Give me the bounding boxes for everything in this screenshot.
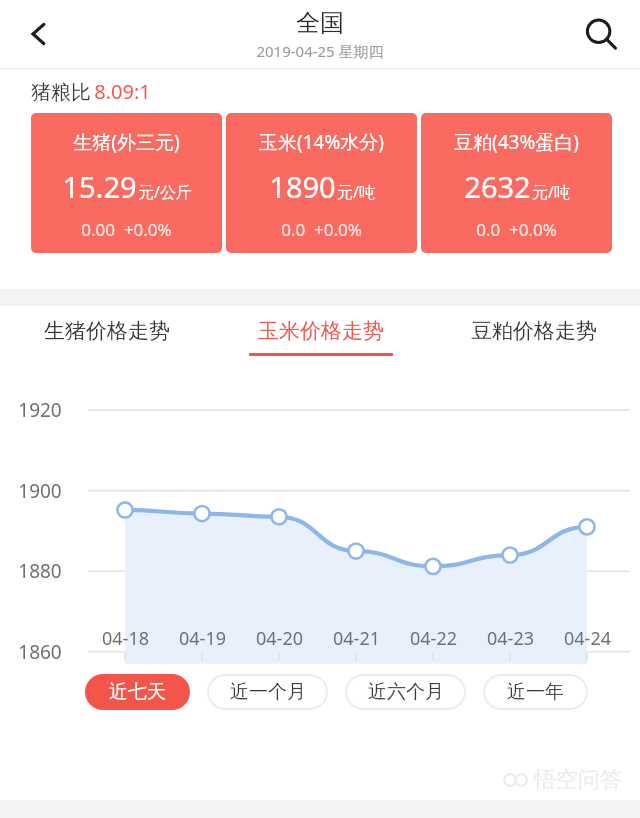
staticText: 近六个月 <box>368 680 444 704</box>
staticText: 1890 <box>269 167 336 206</box>
staticText: 04-21 <box>333 626 380 651</box>
staticText: 04-20 <box>256 626 303 651</box>
staticText: 玉米价格走势 <box>258 318 384 344</box>
button[interactable]: 近六个月 <box>345 674 466 710</box>
staticText: 元/吨 <box>337 181 375 203</box>
staticText: 生猪(外三元) <box>73 129 180 155</box>
staticText: 1900 <box>18 478 62 504</box>
staticText: 近一年 <box>507 680 564 704</box>
staticText: 2019-04-25 星期四 <box>256 41 384 61</box>
staticText: 豆粕价格走势 <box>471 318 597 344</box>
staticText: 15.29 <box>62 167 137 206</box>
button[interactable]: 近一年 <box>483 674 588 710</box>
button[interactable]: 近一个月 <box>207 674 328 710</box>
staticText: 生猪价格走势 <box>44 318 170 344</box>
button[interactable]: Back <box>0 0 78 68</box>
staticText: 悟空问答 <box>534 766 622 794</box>
staticText: 8.09:1 <box>94 78 151 105</box>
button[interactable]: 豆粕(43%蛋白) <box>421 113 612 253</box>
button[interactable]: Search <box>562 0 640 68</box>
staticText: 近一个月 <box>230 680 306 704</box>
staticText: 1860 <box>18 639 62 665</box>
staticText: 元/吨 <box>532 181 570 203</box>
staticText: 04-18 <box>102 626 149 651</box>
staticText: 玉米(14%水分) <box>259 129 384 155</box>
staticText: 04-23 <box>487 626 534 651</box>
button[interactable]: 豆粕价格走势 <box>427 306 640 368</box>
staticText: 元/公斤 <box>138 181 192 203</box>
staticText: 04-24 <box>564 626 611 651</box>
staticText: 1920 <box>18 397 62 423</box>
staticText: 豆粕(43%蛋白) <box>454 129 579 155</box>
staticText: 0.0 +0.0% <box>281 218 362 241</box>
staticText: 猪粮比 <box>28 78 94 105</box>
staticText: 1880 <box>18 558 62 584</box>
staticText: 04-22 <box>410 626 457 651</box>
button[interactable]: 玉米价格走势 <box>214 306 427 368</box>
button[interactable]: 近七天 <box>85 674 190 710</box>
staticText: 0.00 +0.0% <box>81 218 172 241</box>
staticText: 2632 <box>464 167 531 206</box>
staticText: 近七天 <box>109 680 166 704</box>
staticText: 0.0 +0.0% <box>476 218 557 241</box>
staticText: 全国 <box>296 8 344 38</box>
button[interactable]: 玉米(14%水分) <box>226 113 417 253</box>
button[interactable]: 生猪(外三元) <box>31 113 222 253</box>
staticText: 04-19 <box>179 626 226 651</box>
button[interactable]: 生猪价格走势 <box>0 306 214 368</box>
